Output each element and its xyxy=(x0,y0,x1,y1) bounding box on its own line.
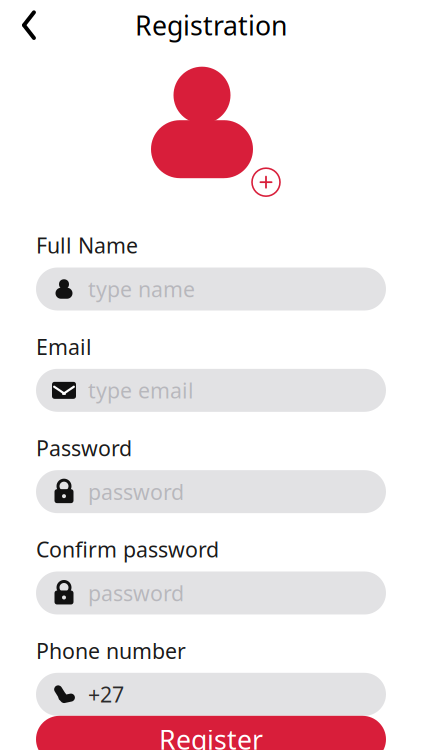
button[interactable]: password xyxy=(36,571,386,614)
button[interactable]: Back xyxy=(6,2,52,48)
button[interactable]: Add photo xyxy=(249,165,283,199)
staticText: Register xyxy=(159,722,263,750)
staticText: +27 xyxy=(88,680,124,708)
button[interactable]: type name xyxy=(36,267,386,310)
staticText: Confirm password xyxy=(36,535,219,563)
staticText: type email xyxy=(88,376,194,404)
button[interactable]: Register xyxy=(36,716,386,750)
button[interactable]: +27 xyxy=(36,673,386,716)
staticText: Registration xyxy=(135,7,287,43)
button[interactable]: type email xyxy=(36,369,386,412)
staticText: Password xyxy=(36,434,132,462)
button[interactable]: password xyxy=(36,470,386,513)
staticText: Phone number xyxy=(36,636,186,665)
staticText: password xyxy=(88,477,184,506)
staticText: Full Name xyxy=(36,231,138,259)
staticText: password xyxy=(88,579,184,607)
staticText: type name xyxy=(88,275,195,303)
staticText: Email xyxy=(36,332,92,361)
